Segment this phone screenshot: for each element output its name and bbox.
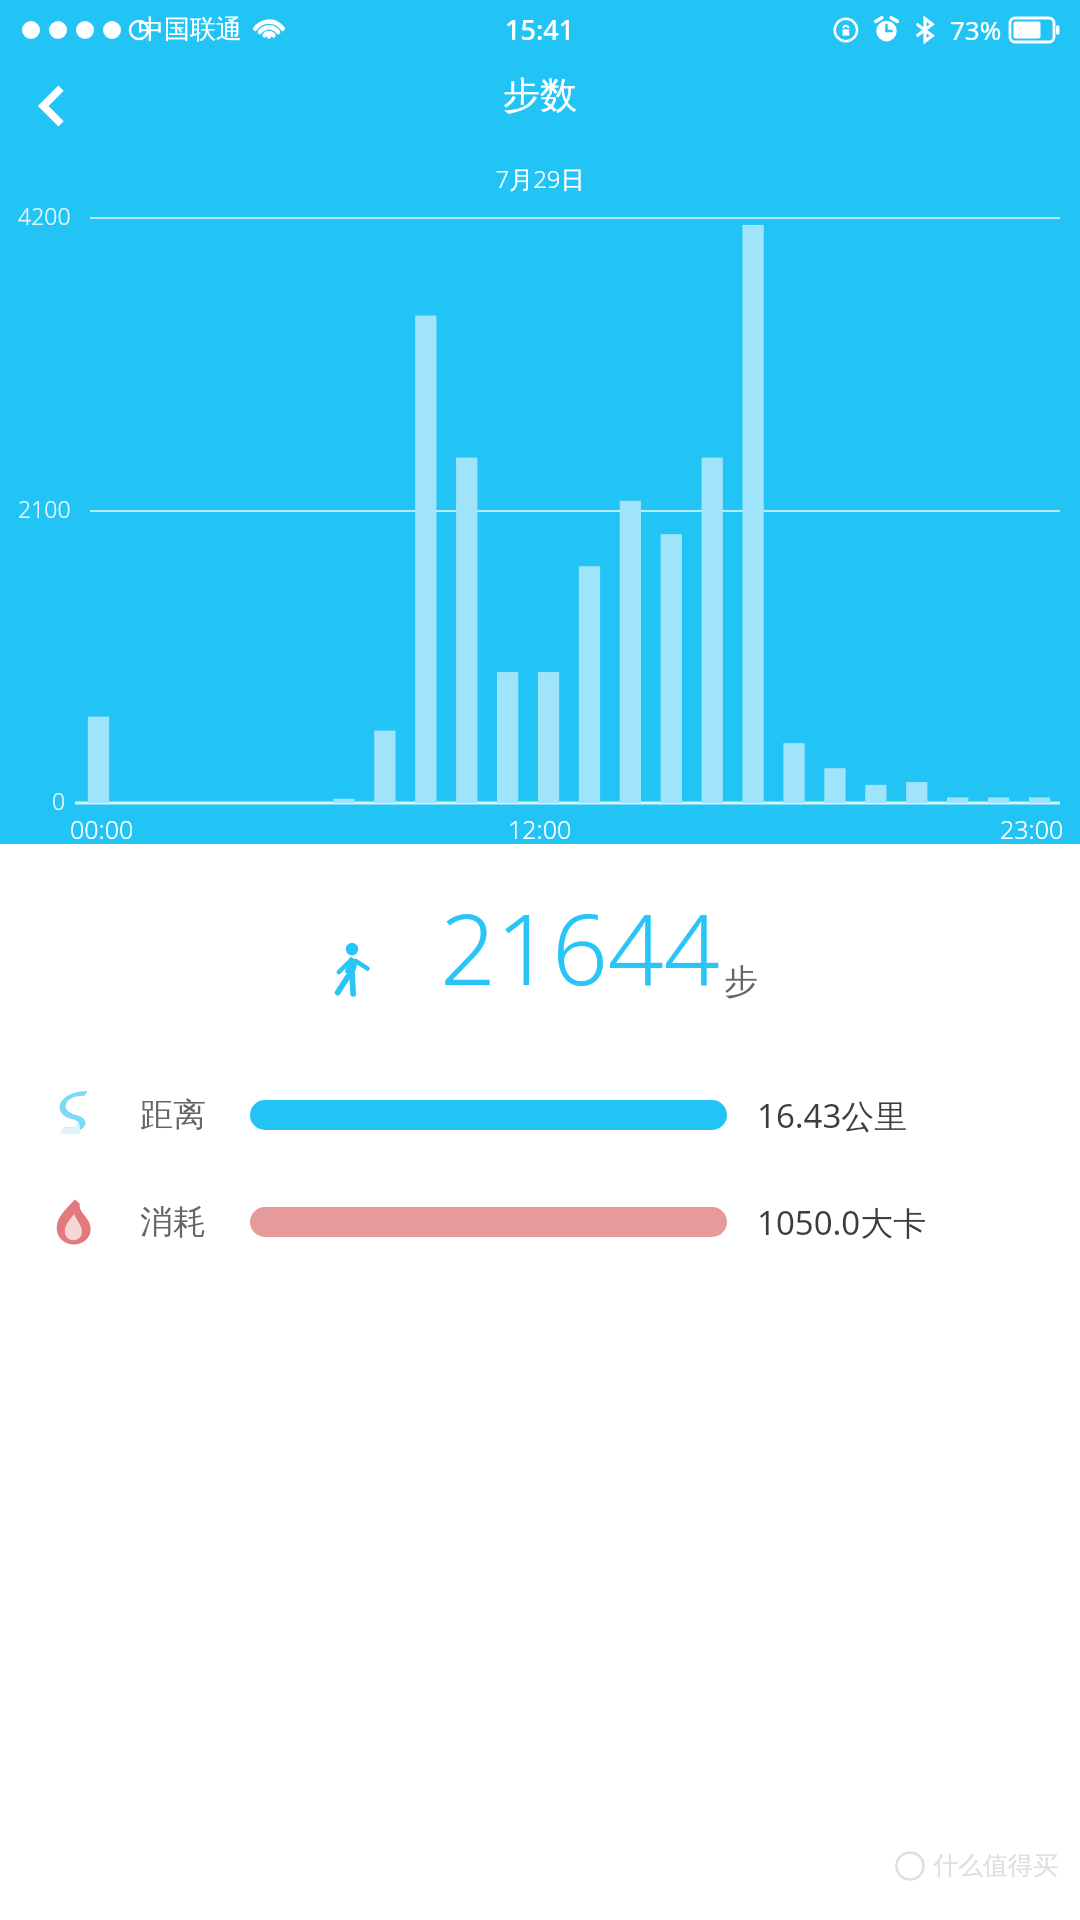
staticText: 中国联通 xyxy=(138,13,242,46)
staticText: 15:41 xyxy=(505,11,575,48)
staticText: 步数 xyxy=(503,72,577,119)
staticText: 23:00 xyxy=(1000,812,1064,846)
button[interactable]: Back xyxy=(4,58,100,154)
staticText: 73% xyxy=(950,12,1002,47)
staticText: 7月29日 xyxy=(495,162,585,195)
staticText: 4200 xyxy=(18,200,71,231)
staticText: 0 xyxy=(52,785,66,816)
button[interactable]: 消耗 xyxy=(0,1172,1080,1272)
staticText: 16.43公里 xyxy=(757,1093,908,1138)
staticText: 00:00 xyxy=(70,812,134,846)
staticText: 2100 xyxy=(18,493,71,524)
staticText: 步 xyxy=(724,960,758,1003)
staticText: 消耗 xyxy=(140,1201,206,1243)
staticText: 什么值得买 xyxy=(933,1850,1058,1881)
staticText: 12:00 xyxy=(508,812,572,846)
button[interactable]: 距离 xyxy=(0,1065,1080,1165)
staticText: 距离 xyxy=(140,1094,206,1136)
staticText: 1050.0大卡 xyxy=(757,1200,927,1245)
staticText: 21644 xyxy=(440,880,720,1013)
